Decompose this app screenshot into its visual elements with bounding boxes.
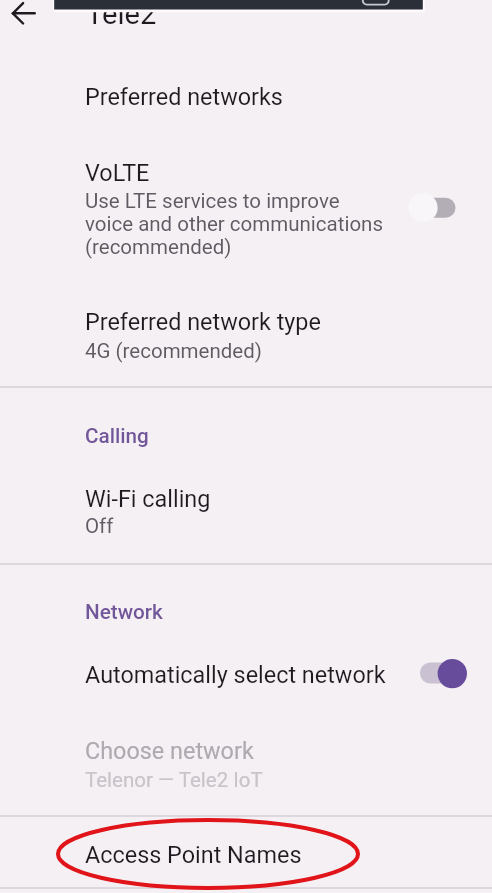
staticText: Choose network	[85, 737, 254, 764]
button[interactable]: Navigate up	[0, 0, 48, 38]
staticText: Automatically select network	[85, 661, 386, 688]
button[interactable]: Automatically select network	[0, 640, 492, 712]
staticText: Calling	[85, 424, 149, 448]
button[interactable]: Automatically select network, on	[410, 651, 480, 697]
staticText: Telenor — Tele2 IoT	[85, 768, 263, 792]
button[interactable]: VoLTE, off	[398, 185, 468, 231]
staticText: Use LTE services to improve voice and ot…	[85, 189, 384, 259]
button[interactable]: Access Point Names	[0, 820, 492, 886]
staticText: 4G (recommended)	[85, 339, 262, 363]
staticText: VoLTE	[85, 159, 150, 186]
staticText: Preferred network type	[85, 308, 321, 335]
staticText: Network	[85, 600, 163, 624]
staticText: Wi-Fi calling	[85, 485, 211, 512]
button[interactable]: VoLTE	[0, 140, 492, 275]
staticText: Preferred networks	[85, 83, 283, 110]
button[interactable]: Wi-Fi calling	[0, 466, 492, 550]
staticText: Tele2	[86, 0, 157, 31]
staticText: Off	[85, 514, 114, 538]
button[interactable]: Preferred network type	[0, 292, 492, 374]
button[interactable]: Preferred networks	[0, 60, 492, 126]
button[interactable]: Choose network	[0, 718, 492, 802]
staticText: Access Point Names	[85, 841, 302, 868]
